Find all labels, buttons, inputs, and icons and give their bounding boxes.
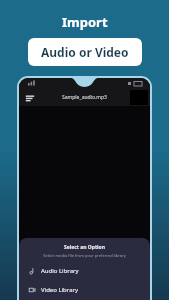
staticText: Video Library bbox=[41, 286, 79, 294]
staticText: Audio or Video bbox=[41, 44, 129, 60]
button[interactable]: Menu bbox=[23, 91, 37, 105]
staticText: Save As bbox=[39, 288, 57, 295]
staticText: Audio Library bbox=[41, 267, 79, 275]
staticText: Play Robotless bbox=[39, 266, 73, 273]
button[interactable]: Video Library bbox=[19, 284, 150, 296]
button[interactable]: Audio or Video bbox=[28, 38, 142, 66]
staticText: Select media file from your preferred li… bbox=[43, 253, 126, 258]
button[interactable]: Play Robotless bbox=[23, 260, 82, 278]
staticText: Sample_audio.mp3 bbox=[62, 94, 107, 101]
staticText: Import bbox=[62, 13, 108, 31]
staticText: Select an Option bbox=[64, 244, 105, 251]
button[interactable]: Save As bbox=[23, 282, 82, 300]
button[interactable]: Audio Library bbox=[19, 265, 150, 277]
